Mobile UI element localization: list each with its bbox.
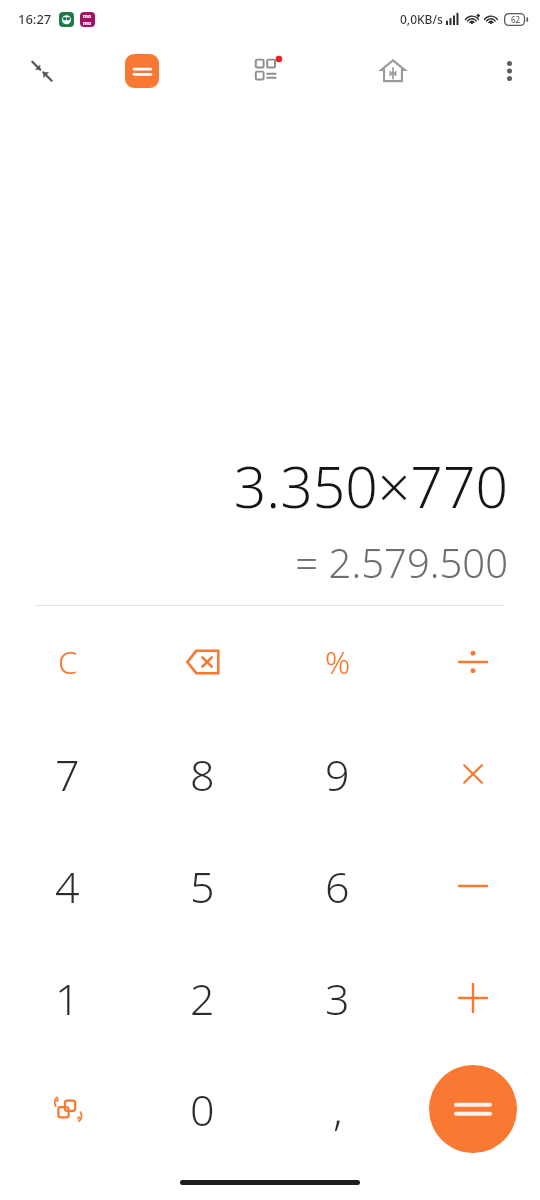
staticText: 9 [325,745,350,804]
button[interactable]: 5 [135,830,270,942]
staticText: 16:27 [18,10,52,28]
button[interactable]: Tools [244,46,294,96]
button[interactable]: 3 [270,942,405,1054]
button[interactable]: Unit converter [0,1054,135,1164]
button[interactable]: 1 [0,942,135,1054]
button[interactable]: 4 [0,830,135,942]
button[interactable]: 8 [135,718,270,830]
staticText: % [325,641,351,683]
button[interactable]: 6 [270,830,405,942]
button[interactable]: 0 [135,1054,270,1164]
button[interactable]: Collapse [18,47,66,95]
button[interactable]: Loan calculator [368,46,418,96]
staticText: = 2.579.500 [295,535,508,589]
button[interactable]: More options [486,48,532,94]
staticText: 3.350×770 [233,447,508,525]
button[interactable]: Equals mode [120,49,164,93]
staticText: 62 [511,14,521,25]
staticText: , [333,1080,343,1139]
staticText: 0,0KB/s [400,11,443,27]
button[interactable]: Plus [405,942,540,1054]
button[interactable]: C [0,606,135,718]
button[interactable]: 7 [0,718,135,830]
button[interactable]: % [270,606,405,718]
button[interactable]: Divide [405,606,540,718]
button[interactable]: Multiply [405,718,540,830]
button[interactable]: Minus [405,830,540,942]
button[interactable]: 2 [135,942,270,1054]
staticText: mo [83,20,92,27]
staticText: 3 [325,969,350,1028]
staticText: C [58,641,78,683]
button[interactable]: Equals [405,1054,540,1164]
button[interactable]: Backspace [135,606,270,718]
staticText: 0 [190,1080,215,1139]
staticText: 1 [55,969,80,1028]
staticText: 2 [190,969,215,1028]
staticText: 5 [190,857,215,916]
staticText: 7 [55,745,80,804]
staticText: 4 [55,857,80,916]
staticText: 6 [325,857,350,916]
staticText: mo [83,13,92,20]
button[interactable]: 9 [270,718,405,830]
staticText: 8 [190,745,215,804]
button[interactable]: , [270,1054,405,1164]
